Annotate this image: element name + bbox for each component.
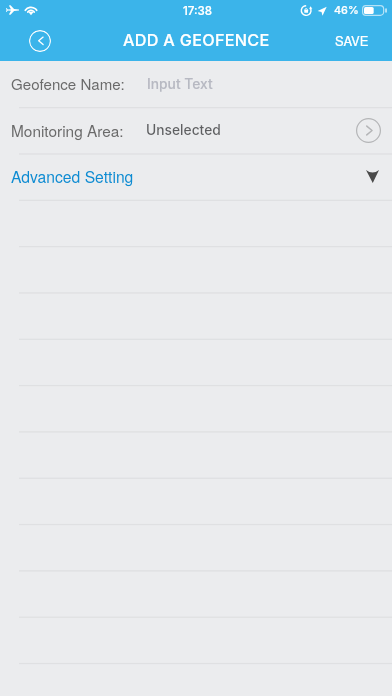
staticText: Monitoring Area: — [11, 119, 124, 141]
staticText: Geofence Name: — [11, 73, 125, 95]
staticText: Input Text — [147, 76, 213, 93]
button[interactable]: Advanced Setting — [0, 153, 392, 199]
staticText: Advanced Setting — [11, 165, 134, 187]
button[interactable]: SAVE — [312, 22, 392, 59]
staticText: SAVE — [335, 31, 369, 50]
staticText: ADD A GEOFENCE — [123, 30, 270, 50]
staticText: 17:38 — [183, 4, 213, 18]
staticText: Unselected — [146, 122, 221, 139]
button[interactable]: Back — [29, 30, 51, 52]
button[interactable]: Geofence Name: — [0, 61, 392, 107]
button[interactable]: Monitoring Area: — [0, 107, 392, 153]
staticText: 46% — [334, 4, 359, 17]
